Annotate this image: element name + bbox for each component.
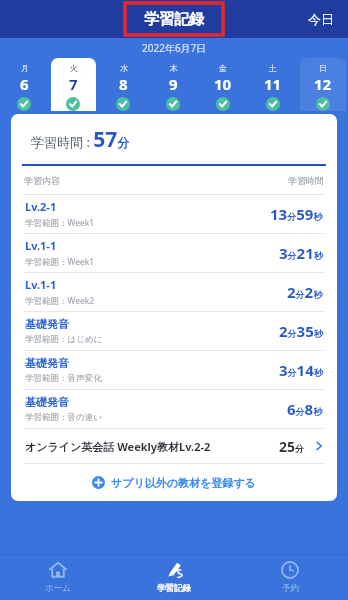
staticText: 7: [69, 74, 78, 94]
button[interactable]: 学習記録: [116, 554, 232, 600]
button[interactable]: 金: [200, 58, 246, 111]
staticText: ホーム: [45, 583, 71, 594]
staticText: Lv.1-1: [25, 277, 57, 292]
staticText: 金: [219, 63, 227, 73]
button[interactable]: 木: [150, 58, 196, 111]
staticText: 25分: [279, 437, 305, 456]
staticText: 学習範囲：Week1: [25, 217, 95, 229]
staticText: 学習範囲：Week1: [25, 256, 95, 268]
button[interactable]: 予約: [232, 554, 348, 600]
staticText: 水: [120, 63, 128, 73]
button[interactable]: ホーム: [0, 554, 116, 600]
button[interactable]: 今日: [294, 5, 348, 33]
staticText: 2分2秒: [287, 282, 323, 302]
staticText: Lv.1-1: [25, 238, 57, 253]
staticText: 基礎発音: [25, 395, 69, 409]
button[interactable]: 基礎発音: [11, 312, 337, 350]
staticText: 2022年6月7日: [142, 41, 207, 55]
staticText: 6: [20, 74, 29, 94]
staticText: 今日: [308, 11, 334, 27]
staticText: Lv.2-1: [25, 199, 57, 214]
button[interactable]: 月: [2, 58, 47, 111]
staticText: 13分59秒: [270, 204, 323, 224]
staticText: 10: [214, 74, 232, 94]
staticText: サプリ以外の教材を登録する: [111, 476, 256, 490]
button[interactable]: 学習記録: [125, 3, 223, 35]
staticText: 日: [319, 63, 327, 73]
staticText: 月: [21, 63, 29, 73]
button[interactable]: サプリ以外の教材を登録する: [11, 464, 337, 501]
staticText: 学習内容: [24, 175, 60, 186]
staticText: 学習範囲：音の違い: [25, 412, 102, 423]
button[interactable]: Lv.2-1: [11, 195, 337, 233]
staticText: 9: [169, 74, 178, 94]
button[interactable]: Lv.1-1: [11, 273, 337, 311]
staticText: 学習記録: [157, 583, 191, 594]
staticText: 木: [170, 63, 178, 73]
staticText: 火: [70, 63, 78, 73]
button[interactable]: オンライン英会話 Weekly教材Lv.2-2: [11, 429, 337, 463]
staticText: 学習時間: [288, 175, 324, 186]
button[interactable]: Lv.1-1: [11, 234, 337, 272]
button[interactable]: 土: [250, 58, 296, 111]
staticText: 学習記録: [144, 10, 204, 29]
staticText: 8: [119, 74, 128, 94]
button[interactable]: 基礎発音: [11, 390, 337, 428]
button[interactable]: 日: [300, 58, 346, 111]
button[interactable]: 火: [51, 58, 96, 111]
staticText: 学習範囲：音声変化: [25, 373, 102, 384]
staticText: 3分14秒: [279, 360, 323, 380]
staticText: 学習時間 : 57分: [31, 125, 130, 154]
staticText: 基礎発音: [25, 356, 69, 370]
button[interactable]: 基礎発音: [11, 351, 337, 389]
staticText: 12: [314, 74, 332, 94]
staticText: 予約: [282, 583, 299, 594]
staticText: 11: [264, 74, 282, 94]
staticText: 6分8秒: [287, 399, 323, 419]
staticText: 2分35秒: [279, 321, 323, 341]
button[interactable]: 水: [100, 58, 146, 111]
staticText: オンライン英会話 Weekly教材Lv.2-2: [25, 439, 211, 454]
staticText: 学習範囲：Week2: [25, 295, 95, 307]
staticText: 3分21秒: [279, 243, 323, 263]
staticText: 学習範囲：はじめに: [25, 334, 103, 345]
staticText: 基礎発音: [25, 317, 69, 331]
staticText: 土: [269, 63, 277, 73]
